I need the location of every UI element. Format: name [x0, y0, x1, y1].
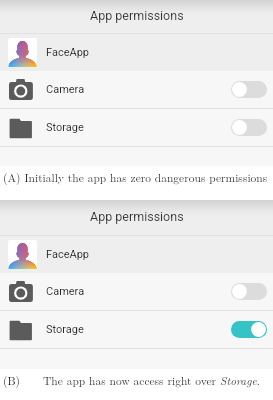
staticText: App permissions: [90, 8, 184, 23]
staticText: FaceApp: [46, 248, 90, 261]
staticText: (B) The app has now access right over St…: [3, 372, 261, 388]
button[interactable]: Storage: [0, 311, 273, 348]
button[interactable]: Camera: [0, 71, 273, 108]
staticText: App permissions: [90, 209, 184, 224]
button[interactable]: Camera: [0, 273, 273, 310]
button[interactable]: Permission denied, toggle on: [231, 81, 267, 98]
button[interactable]: Permission denied, toggle on: [231, 283, 267, 300]
staticText: Camera: [46, 83, 85, 96]
button[interactable]: Storage: [0, 109, 273, 146]
staticText: Camera: [46, 285, 85, 298]
button[interactable]: FaceApp: [0, 236, 273, 273]
staticText: Storage: [46, 121, 84, 134]
staticText: FaceApp: [46, 46, 90, 59]
staticText: (A) Initially the app has zero dangerous…: [3, 169, 268, 185]
button[interactable]: Permission denied, toggle on: [231, 119, 267, 136]
button[interactable]: FaceApp: [0, 34, 273, 71]
staticText: Storage: [46, 323, 84, 336]
button[interactable]: Permission granted, toggle off: [231, 321, 267, 338]
